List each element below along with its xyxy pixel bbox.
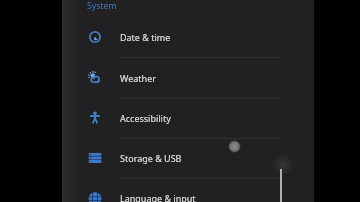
staticText: System [87,0,117,12]
button[interactable]: Date & time [62,17,314,57]
button[interactable]: Weather [62,57,314,98]
staticText: Language & input [120,192,196,202]
button[interactable]: Language & input [62,178,314,202]
staticText: Date & time [120,31,171,43]
button[interactable]: Accessibility [62,98,314,138]
staticText: Storage & USB [120,152,182,164]
staticText: Weather [120,72,156,84]
button[interactable]: Storage & USB [62,138,314,178]
staticText: Accessibility [120,112,171,124]
